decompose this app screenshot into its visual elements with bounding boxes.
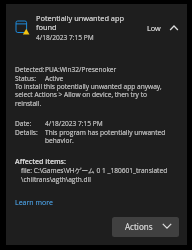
staticText: This program has potentially unwanted	[45, 128, 166, 137]
button[interactable]: Learn more	[15, 198, 53, 208]
staticText: found	[36, 22, 57, 32]
staticText: Detected:	[15, 65, 45, 74]
staticText: select Actions > Allow on device, then t…	[15, 90, 147, 99]
staticText: Details:	[15, 128, 38, 137]
staticText: 4/18/2023 7:15 PM	[45, 119, 103, 128]
staticText: reinstall.	[15, 99, 42, 108]
staticText: Status:	[15, 74, 36, 83]
staticText: Active	[45, 74, 64, 83]
staticText: Potentially unwanted app	[36, 13, 125, 23]
button[interactable]: Actions	[112, 217, 179, 237]
staticText: behavior.	[45, 136, 74, 145]
staticText: To install this potentially unwanted app…	[15, 82, 162, 91]
staticText: Date:	[15, 119, 32, 128]
staticText: Low	[147, 23, 161, 33]
staticText: Learn more	[15, 198, 53, 208]
staticText: Actions	[125, 221, 153, 232]
staticText: Affected items:	[15, 157, 66, 167]
staticText: PUA:Win32/Presenoker	[45, 65, 117, 74]
staticText: file: C:\Games\VHゲーム 0 1 _180601_transla…	[21, 166, 168, 175]
staticText: \chiitrans\agth\agth.dll	[21, 175, 91, 184]
button[interactable]: Collapse	[166, 20, 182, 36]
staticText: 4/18/2023 7:15 PM	[36, 33, 94, 42]
